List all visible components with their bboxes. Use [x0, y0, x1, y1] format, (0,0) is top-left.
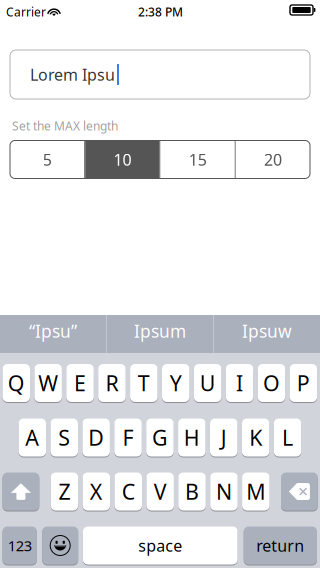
- button[interactable]: Lorem Ipsu: [10, 50, 310, 99]
- staticText: G: [152, 423, 168, 452]
- button[interactable]: Delete: [281, 472, 318, 511]
- button[interactable]: E: [66, 363, 94, 402]
- staticText: X: [90, 477, 103, 506]
- staticText: T: [138, 369, 150, 397]
- button[interactable]: L: [274, 418, 301, 457]
- button[interactable]: B: [178, 472, 206, 511]
- staticText: C: [122, 477, 135, 506]
- staticText: Carrier: [6, 4, 46, 20]
- staticText: E: [74, 369, 86, 397]
- button[interactable]: Q: [2, 363, 30, 402]
- staticText: Z: [58, 477, 70, 506]
- staticText: 2:38 PM: [138, 4, 183, 20]
- staticText: K: [249, 423, 262, 452]
- staticText: O: [263, 369, 280, 397]
- staticText: P: [297, 369, 310, 397]
- staticText: L: [282, 423, 293, 452]
- staticText: Y: [170, 369, 182, 397]
- button[interactable]: space: [83, 526, 238, 565]
- staticText: W: [38, 369, 58, 397]
- staticText: Lorem Ipsu: [30, 64, 115, 85]
- button[interactable]: N: [210, 472, 238, 511]
- button[interactable]: Z: [51, 472, 78, 511]
- button[interactable]: Ipsuw: [214, 315, 320, 353]
- button[interactable]: 10: [85, 140, 159, 178]
- button[interactable]: V: [146, 472, 174, 511]
- button[interactable]: 20: [236, 140, 310, 178]
- button[interactable]: 123: [2, 526, 37, 565]
- staticText: H: [184, 423, 200, 452]
- staticText: Set the MAX length: [12, 118, 118, 134]
- button[interactable]: G: [146, 418, 174, 457]
- staticText: F: [122, 423, 133, 452]
- button[interactable]: return: [244, 526, 317, 565]
- staticText: 20: [264, 149, 282, 170]
- staticText: N: [216, 477, 232, 506]
- button[interactable]: H: [178, 418, 206, 457]
- staticText: D: [88, 423, 104, 452]
- staticText: 15: [189, 149, 207, 170]
- button[interactable]: D: [82, 418, 110, 457]
- button[interactable]: F: [114, 418, 142, 457]
- staticText: S: [58, 423, 70, 452]
- staticText: V: [154, 477, 167, 506]
- button[interactable]: 5: [10, 140, 84, 178]
- staticText: Ipsum: [134, 319, 186, 342]
- staticText: Ipsuw: [242, 319, 292, 342]
- button[interactable]: 15: [160, 140, 235, 178]
- button[interactable]: K: [242, 418, 269, 457]
- button[interactable]: S: [50, 418, 78, 457]
- button[interactable]: P: [290, 363, 317, 402]
- staticText: J: [221, 423, 227, 452]
- staticText: return: [256, 535, 304, 556]
- staticText: B: [185, 477, 199, 506]
- button[interactable]: I: [226, 363, 253, 402]
- button[interactable]: A: [19, 418, 46, 457]
- button[interactable]: W: [34, 363, 62, 402]
- button[interactable]: R: [98, 363, 126, 402]
- staticText: I: [236, 369, 243, 397]
- staticText: 123: [8, 536, 32, 555]
- button[interactable]: Y: [162, 363, 189, 402]
- button[interactable]: “Ipsu”: [0, 315, 106, 353]
- button[interactable]: O: [258, 363, 285, 402]
- button[interactable]: X: [83, 472, 110, 511]
- staticText: M: [246, 477, 265, 506]
- button[interactable]: U: [194, 363, 221, 402]
- staticText: 5: [43, 149, 52, 170]
- staticText: 10: [113, 149, 131, 170]
- staticText: “Ipsu”: [29, 319, 77, 342]
- staticText: Q: [8, 369, 25, 397]
- button[interactable]: C: [114, 472, 142, 511]
- staticText: U: [200, 369, 216, 397]
- button[interactable]: T: [130, 363, 158, 402]
- button[interactable]: Emoji: [42, 526, 78, 565]
- button[interactable]: Shift: [2, 472, 39, 511]
- button[interactable]: Ipsum: [107, 315, 213, 353]
- button[interactable]: J: [210, 418, 237, 457]
- staticText: R: [105, 369, 118, 397]
- button[interactable]: M: [242, 472, 270, 511]
- staticText: space: [138, 535, 182, 556]
- staticText: A: [25, 423, 39, 452]
